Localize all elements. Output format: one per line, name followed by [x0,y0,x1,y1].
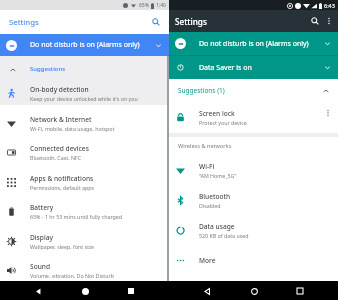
staticText: 6:43 [324,2,335,9]
staticText: Display [30,233,53,242]
button[interactable]: Bluetooth [169,185,338,215]
staticText: Network & Internet [30,115,92,124]
staticText: On-body detection [30,85,89,94]
staticText: Wireless & networks [178,142,232,150]
staticText: Suggestions [30,65,66,73]
button[interactable]: More options [322,14,336,28]
staticText: Volume, vibration, Do Not Disturb [30,272,114,279]
button[interactable]: Home [245,282,263,300]
button[interactable]: Sound [0,256,169,285]
staticText: Sound [30,262,51,271]
button[interactable]: Network & Internet [0,108,169,138]
button[interactable]: Data usage [169,215,338,245]
staticText: 65% - 1 hr 53 mins until fully charged [30,213,123,220]
button[interactable]: On-body detection [0,82,169,105]
staticText: Apps & notifications [30,174,94,183]
button[interactable]: More [169,245,338,275]
staticText: Settings [9,17,39,28]
button[interactable]: Do not disturb is on (Alarms only) [169,32,338,55]
staticText: Wi-Fi [199,162,215,171]
button[interactable]: Search [308,14,322,28]
button[interactable]: Connected devices [0,138,169,167]
staticText: Bluetooth, Cast, NFC [30,154,82,161]
staticText: Do not disturb is on (Alarms only) [199,39,309,49]
staticText: Suggestions (1) [178,86,225,95]
staticText: More [199,256,216,265]
button[interactable]: Data Saver is on [169,56,338,79]
staticText: Data usage [199,222,235,231]
button[interactable]: Search [149,15,163,29]
staticText: Permissions, default apps [30,184,94,191]
button[interactable]: Back [29,282,47,300]
button[interactable]: Display [0,226,169,256]
staticText: Wallpaper, sleep, font size [30,243,95,250]
staticText: Keep your device unlocked while it's on … [30,95,138,102]
staticText: Battery [30,203,54,212]
button[interactable]: Apps & notifications [0,167,169,197]
staticText: Data Saver is on [199,63,252,73]
button[interactable]: Wi-Fi [169,155,338,185]
button[interactable]: Suggestions [0,56,169,82]
staticText: Screen lock [199,109,235,118]
button[interactable]: More [322,107,334,119]
staticText: 65% [139,2,149,9]
button[interactable]: Suggestions (1) [169,79,338,102]
button[interactable]: Battery [0,197,169,226]
staticText: 1:40 [156,2,166,9]
staticText: Bluetooth [199,192,231,201]
button[interactable]: Back [198,282,216,300]
button[interactable]: Recents [291,282,309,300]
staticText: Disabled [199,202,221,209]
button[interactable]: Do not disturb is on (Alarms only) [0,34,169,56]
staticText: 520 KB of data used [199,232,249,239]
staticText: Wi-Fi, mobile, data usage, hotspot [30,125,115,132]
staticText: Settings [175,16,207,27]
button[interactable]: Screen lock [169,102,338,133]
staticText: Do not disturb is on (Alarms only) [30,40,140,50]
staticText: Connected devices [30,144,89,153]
button[interactable]: Recents [122,282,140,300]
staticText: “AM Home_5G” [199,172,237,179]
button[interactable]: Home [76,282,94,300]
staticText: Protect your device [199,119,247,126]
